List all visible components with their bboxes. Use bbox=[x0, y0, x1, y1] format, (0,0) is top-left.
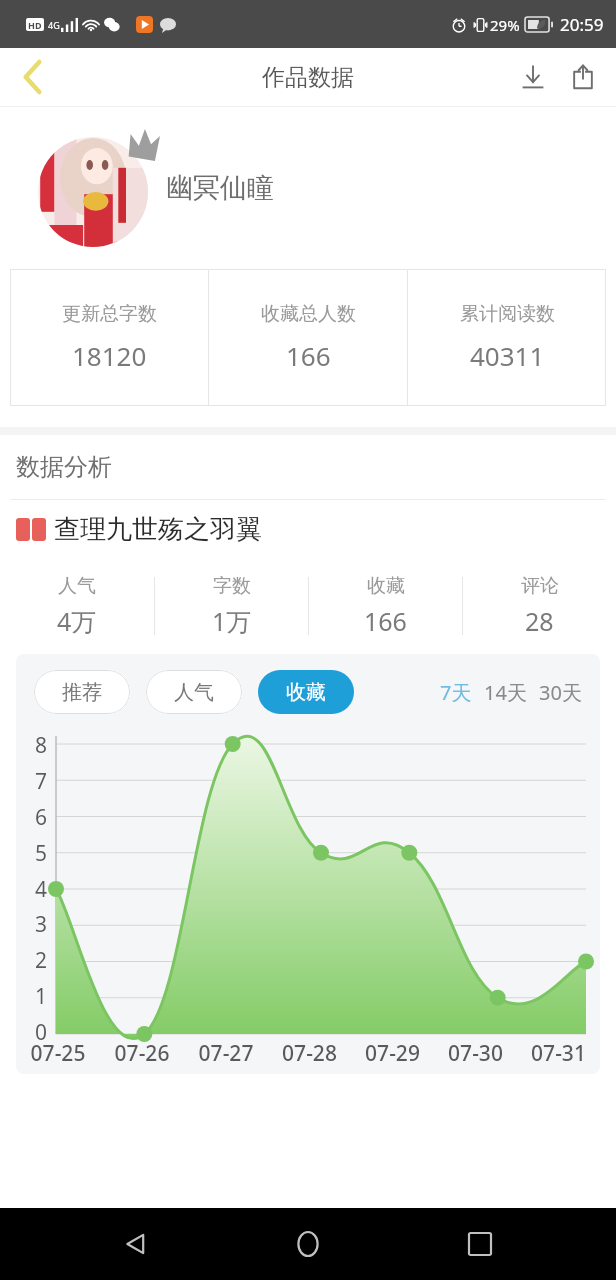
staticText: 07-30 bbox=[434, 1039, 517, 1068]
button[interactable]: 收藏总人数 bbox=[209, 269, 407, 406]
staticText: 0 bbox=[35, 1018, 48, 1047]
staticText: 评论 bbox=[521, 574, 559, 598]
button[interactable]: Home bbox=[272, 1208, 344, 1280]
staticText: 7 bbox=[35, 767, 48, 796]
staticText: 40311 bbox=[470, 338, 545, 373]
staticText: 字数 bbox=[213, 574, 251, 598]
staticText: 4 bbox=[35, 875, 48, 904]
button[interactable]: 推荐 bbox=[34, 670, 130, 714]
staticText: HD bbox=[28, 19, 42, 31]
staticText: 07-25 bbox=[16, 1039, 100, 1068]
staticText: 2 bbox=[35, 946, 48, 975]
staticText: 幽冥仙瞳 bbox=[166, 171, 274, 205]
staticText: 18120 bbox=[72, 338, 147, 373]
staticText: 人气 bbox=[58, 574, 96, 598]
staticText: 4万 bbox=[57, 604, 97, 638]
button[interactable]: 人气 bbox=[146, 670, 242, 714]
staticText: 收藏 bbox=[286, 680, 326, 705]
button[interactable]: Back bbox=[100, 1208, 172, 1280]
button[interactable]: 更新总字数 bbox=[10, 269, 208, 406]
staticText: 推荐 bbox=[62, 680, 102, 705]
staticText: 07-29 bbox=[351, 1039, 434, 1068]
staticText: 30天 bbox=[539, 679, 582, 706]
staticText: 07-27 bbox=[184, 1039, 268, 1068]
staticText: 166 bbox=[286, 338, 331, 373]
staticText: 20:59 bbox=[560, 13, 604, 36]
staticText: 作品数据 bbox=[262, 63, 354, 92]
staticText: 14天 bbox=[484, 679, 527, 706]
button[interactable]: Download bbox=[508, 52, 558, 102]
button[interactable]: 评论 bbox=[463, 558, 616, 654]
staticText: 07-31 bbox=[517, 1039, 600, 1068]
staticText: 人气 bbox=[174, 680, 214, 705]
staticText: 累计阅读数 bbox=[460, 302, 555, 326]
button[interactable]: Share bbox=[558, 52, 608, 102]
button[interactable]: 收藏 bbox=[258, 670, 354, 714]
button[interactable]: 人气 bbox=[0, 558, 154, 654]
button[interactable]: 30天 bbox=[537, 671, 584, 714]
button[interactable]: 7天 bbox=[438, 671, 474, 714]
staticText: 166 bbox=[364, 604, 407, 638]
button[interactable]: 14天 bbox=[482, 671, 529, 714]
staticText: 查理九世殇之羽翼 bbox=[54, 513, 262, 546]
button[interactable]: 累计阅读数 bbox=[408, 269, 606, 406]
button[interactable]: Back bbox=[6, 51, 58, 103]
staticText: 3 bbox=[35, 910, 48, 939]
button[interactable]: 查理九世殇之羽翼 bbox=[0, 500, 616, 558]
button[interactable]: 收藏 bbox=[309, 558, 462, 654]
staticText: 29% bbox=[490, 15, 520, 35]
staticText: 07-26 bbox=[100, 1039, 184, 1068]
staticText: 8 bbox=[35, 731, 48, 760]
staticText: 收藏 bbox=[367, 574, 405, 598]
button[interactable]: 字数 bbox=[155, 558, 308, 654]
staticText: 28 bbox=[525, 604, 554, 638]
staticText: 7天 bbox=[440, 679, 472, 706]
staticText: 4G bbox=[48, 19, 60, 31]
staticText: 更新总字数 bbox=[62, 302, 157, 326]
staticText: 数据分析 bbox=[16, 452, 112, 482]
staticText: 5 bbox=[35, 839, 48, 868]
staticText: 6 bbox=[35, 803, 48, 832]
staticText: 收藏总人数 bbox=[261, 302, 356, 326]
staticText: 1万 bbox=[212, 604, 252, 638]
button[interactable]: Recents bbox=[444, 1208, 516, 1280]
staticText: 07-28 bbox=[268, 1039, 351, 1068]
button[interactable]: 幽冥仙瞳 bbox=[0, 107, 616, 269]
staticText: 1 bbox=[35, 982, 48, 1011]
